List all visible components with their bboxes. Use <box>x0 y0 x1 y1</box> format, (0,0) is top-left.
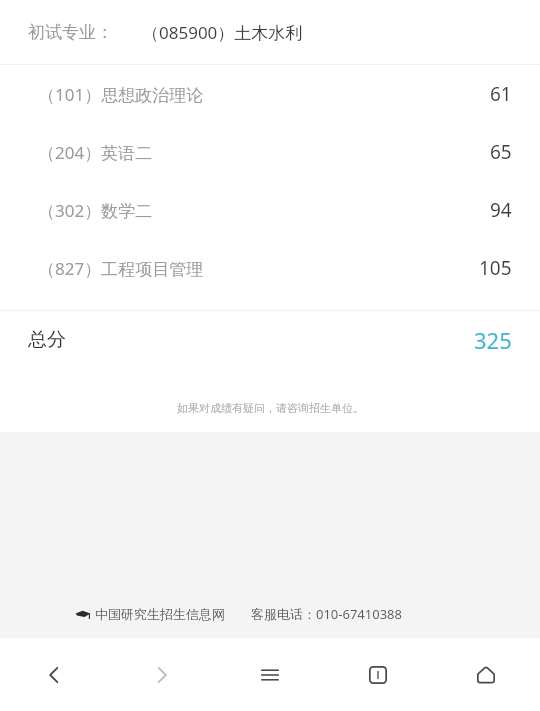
staticText: 客服电话：010-67410388 <box>251 605 402 623</box>
staticText: 94 <box>490 197 512 223</box>
button[interactable]: （101）思想政治理论 <box>0 65 540 123</box>
button[interactable]: Forward <box>108 638 216 711</box>
staticText: 325 <box>474 325 512 355</box>
staticText: 61 <box>490 81 512 107</box>
staticText: （302）数学二 <box>38 199 153 222</box>
staticText: （204）英语二 <box>38 141 153 164</box>
staticText: 105 <box>479 255 512 281</box>
staticText: 中国研究生招生信息网 <box>95 606 225 622</box>
button[interactable]: 总分 <box>0 311 540 369</box>
button[interactable]: Menu <box>216 638 324 711</box>
button[interactable]: （827）工程项目管理 <box>0 239 540 297</box>
button[interactable]: Back <box>0 638 108 711</box>
staticText: 如果对成绩有疑问，请咨询招生单位。 <box>177 401 364 415</box>
staticText: 总分 <box>28 328 66 352</box>
staticText: 65 <box>490 139 512 165</box>
staticText: （101）思想政治理论 <box>38 83 204 106</box>
button[interactable]: Home <box>432 638 540 711</box>
button[interactable]: （302）数学二 <box>0 181 540 239</box>
staticText: 初试专业： <box>28 22 113 43</box>
button[interactable]: Tabs <box>324 638 432 711</box>
staticText: （085900）土木水利 <box>142 21 303 44</box>
staticText: （827）工程项目管理 <box>38 257 204 280</box>
button[interactable]: （204）英语二 <box>0 123 540 181</box>
